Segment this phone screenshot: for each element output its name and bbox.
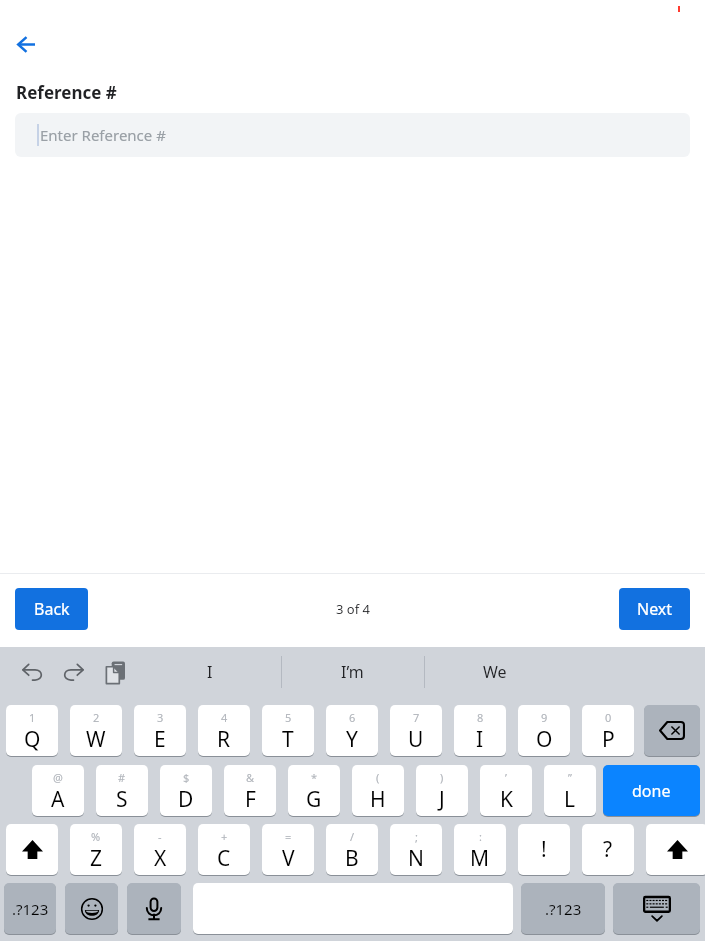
button[interactable]: - bbox=[134, 824, 186, 875]
staticText: X bbox=[154, 844, 167, 873]
staticText: & bbox=[246, 770, 255, 785]
staticText: W bbox=[86, 725, 106, 754]
button[interactable]: ’ bbox=[480, 765, 532, 816]
button[interactable]: / bbox=[326, 824, 378, 875]
button[interactable]: 9 bbox=[518, 705, 570, 756]
button[interactable]: Back bbox=[6, 24, 46, 64]
button[interactable]: .?123 bbox=[4, 883, 56, 934]
button[interactable]: 0 bbox=[582, 705, 634, 756]
button[interactable]: Back bbox=[15, 588, 88, 630]
staticText: V bbox=[282, 844, 295, 873]
staticText: Y bbox=[346, 725, 358, 754]
button[interactable]: Hide keyboard bbox=[613, 883, 700, 934]
button[interactable]: 7 bbox=[390, 705, 442, 756]
staticText: 6 bbox=[349, 710, 356, 725]
button[interactable]: % bbox=[70, 824, 122, 875]
staticText: 4 bbox=[221, 710, 228, 725]
button[interactable]: = bbox=[262, 824, 314, 875]
button[interactable]: We bbox=[424, 647, 566, 697]
button[interactable]: ! bbox=[518, 824, 570, 875]
button[interactable]: 5 bbox=[262, 705, 314, 756]
button[interactable]: I bbox=[139, 647, 281, 697]
staticText: ( bbox=[376, 770, 380, 785]
button[interactable]: & bbox=[224, 765, 276, 816]
button[interactable]: .?123 bbox=[521, 883, 605, 934]
staticText: ” bbox=[568, 770, 572, 785]
staticText: : bbox=[479, 829, 482, 844]
staticText: G bbox=[306, 785, 322, 814]
staticText: I bbox=[476, 725, 484, 754]
staticText: # bbox=[118, 770, 126, 785]
button[interactable]: Backspace bbox=[644, 705, 700, 756]
button[interactable]: # bbox=[96, 765, 148, 816]
button[interactable]: 3 bbox=[134, 705, 186, 756]
staticText: 1 bbox=[29, 710, 36, 725]
staticText: * bbox=[311, 770, 318, 785]
button[interactable]: 8 bbox=[454, 705, 506, 756]
staticText: ? bbox=[603, 835, 613, 864]
staticText: Q bbox=[24, 725, 41, 754]
staticText: 2 bbox=[93, 710, 100, 725]
staticText: 3 bbox=[157, 710, 164, 725]
button[interactable]: 4 bbox=[198, 705, 250, 756]
staticText: M bbox=[470, 844, 490, 873]
button[interactable]: Enter Reference # bbox=[15, 113, 690, 157]
staticText: T bbox=[282, 725, 294, 754]
staticText: I bbox=[207, 661, 213, 683]
button[interactable]: @ bbox=[32, 765, 84, 816]
staticText: D bbox=[178, 785, 194, 814]
staticText: C bbox=[217, 844, 231, 873]
staticText: K bbox=[500, 785, 513, 814]
button[interactable]: Redo bbox=[56, 655, 90, 689]
button[interactable]: ( bbox=[352, 765, 404, 816]
staticText: @ bbox=[53, 770, 63, 785]
staticText: + bbox=[221, 829, 228, 844]
button[interactable]: Shift bbox=[646, 824, 705, 875]
staticText: H bbox=[370, 785, 386, 814]
button[interactable]: + bbox=[198, 824, 250, 875]
staticText: P bbox=[602, 725, 615, 754]
staticText: S bbox=[116, 785, 128, 814]
staticText: 0 bbox=[605, 710, 612, 725]
button[interactable]: Shift bbox=[6, 824, 58, 875]
staticText: 8 bbox=[477, 710, 484, 725]
button[interactable]: ) bbox=[416, 765, 468, 816]
staticText: = bbox=[285, 829, 292, 844]
button[interactable]: 1 bbox=[6, 705, 58, 756]
button[interactable]: : bbox=[454, 824, 506, 875]
button[interactable]: I’m bbox=[281, 647, 423, 697]
button[interactable]: Clipboard bbox=[98, 655, 132, 689]
staticText: R bbox=[217, 725, 231, 754]
staticText: Next bbox=[637, 598, 673, 620]
staticText: .?123 bbox=[545, 899, 582, 919]
staticText: B bbox=[345, 844, 359, 873]
staticText: / bbox=[350, 829, 355, 844]
button[interactable]: ” bbox=[544, 765, 596, 816]
button[interactable]: ? bbox=[582, 824, 634, 875]
button[interactable]: * bbox=[288, 765, 340, 816]
staticText: 3 of 4 bbox=[336, 600, 370, 618]
button[interactable]: 2 bbox=[70, 705, 122, 756]
staticText: ’ bbox=[505, 770, 507, 785]
staticText: .?123 bbox=[12, 899, 49, 919]
button[interactable]: Next bbox=[619, 588, 690, 630]
staticText: A bbox=[51, 785, 65, 814]
staticText: 9 bbox=[541, 710, 548, 725]
staticText: O bbox=[536, 725, 553, 754]
staticText: 5 bbox=[285, 710, 292, 725]
button[interactable]: Voice input bbox=[127, 883, 181, 934]
staticText: ; bbox=[415, 829, 418, 844]
staticText: ) bbox=[440, 770, 444, 785]
staticText: % bbox=[91, 829, 101, 844]
button[interactable]: 6 bbox=[326, 705, 378, 756]
button[interactable]: Emoji bbox=[65, 883, 118, 934]
button[interactable]: $ bbox=[160, 765, 212, 816]
staticText: F bbox=[245, 785, 256, 814]
button[interactable]: Undo bbox=[15, 655, 49, 689]
staticText: L bbox=[564, 785, 576, 814]
button[interactable]: ; bbox=[390, 824, 442, 875]
staticText: $ bbox=[183, 770, 190, 785]
staticText: Enter Reference # bbox=[40, 125, 166, 145]
button[interactable]: done bbox=[603, 765, 700, 816]
